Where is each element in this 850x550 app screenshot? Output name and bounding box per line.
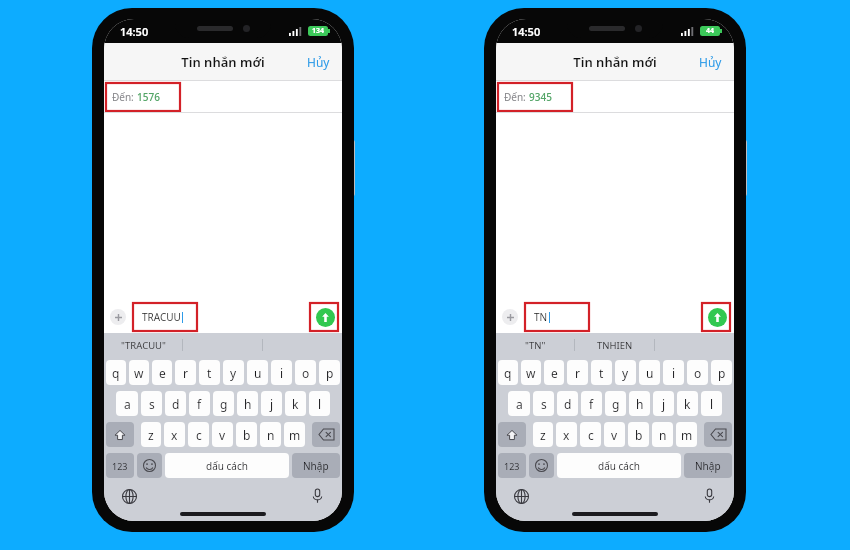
button[interactable]: f bbox=[189, 391, 210, 416]
staticText: n bbox=[267, 427, 275, 443]
staticText: j bbox=[270, 396, 274, 412]
button[interactable]: u bbox=[639, 360, 660, 385]
button[interactable]: Dictation bbox=[306, 485, 328, 507]
button[interactable]: q bbox=[498, 360, 518, 385]
button[interactable]: o bbox=[687, 360, 708, 385]
button[interactable]: i bbox=[271, 360, 292, 385]
button[interactable]: f bbox=[581, 391, 602, 416]
button[interactable]: Nhập bbox=[292, 453, 340, 478]
staticText: p bbox=[718, 365, 726, 381]
button[interactable]: o bbox=[295, 360, 316, 385]
button[interactable]: v bbox=[212, 422, 233, 447]
button[interactable]: Emoji bbox=[529, 453, 554, 478]
button[interactable]: l bbox=[701, 391, 722, 416]
button[interactable]: Hủy bbox=[687, 48, 734, 76]
staticText: a bbox=[516, 396, 523, 412]
button[interactable]: w bbox=[521, 360, 541, 385]
button[interactable]: Đến: bbox=[504, 90, 552, 104]
button[interactable]: b bbox=[236, 422, 257, 447]
button[interactable]: h bbox=[237, 391, 258, 416]
button[interactable]: u bbox=[247, 360, 268, 385]
button[interactable]: n bbox=[652, 422, 673, 447]
button[interactable]: a bbox=[508, 391, 530, 416]
button[interactable]: z bbox=[533, 422, 553, 447]
button[interactable]: d bbox=[165, 391, 186, 416]
button[interactable]: t bbox=[591, 360, 612, 385]
button[interactable]: TRACUU bbox=[133, 307, 308, 327]
button[interactable]: "TN" bbox=[496, 333, 574, 357]
button[interactable]: r bbox=[567, 360, 588, 385]
button[interactable]: y bbox=[223, 360, 244, 385]
button[interactable]: Emoji bbox=[137, 453, 162, 478]
button[interactable]: Đến: bbox=[112, 90, 160, 104]
button[interactable]: v bbox=[604, 422, 625, 447]
button[interactable]: TNHIEN bbox=[575, 333, 654, 357]
button[interactable]: c bbox=[188, 422, 209, 447]
button[interactable]: p bbox=[711, 360, 732, 385]
staticText: Đến: bbox=[504, 90, 529, 104]
button[interactable]: e bbox=[544, 360, 564, 385]
button[interactable]: t bbox=[199, 360, 220, 385]
staticText: u bbox=[646, 365, 654, 381]
button[interactable]: p bbox=[319, 360, 340, 385]
button[interactable]: Add attachment bbox=[502, 309, 518, 325]
button[interactable]: Send bbox=[706, 306, 728, 328]
button[interactable]: m bbox=[284, 422, 305, 447]
button[interactable]: Add attachment bbox=[110, 309, 126, 325]
button[interactable]: n bbox=[260, 422, 281, 447]
button[interactable]: d bbox=[557, 391, 578, 416]
button[interactable]: Dictation bbox=[698, 485, 720, 507]
staticText: y bbox=[622, 365, 629, 381]
button[interactable]: x bbox=[556, 422, 577, 447]
button[interactable]: j bbox=[261, 391, 282, 416]
button[interactable]: c bbox=[580, 422, 601, 447]
button[interactable]: y bbox=[615, 360, 636, 385]
staticText: m bbox=[681, 427, 693, 443]
button[interactable]: m bbox=[676, 422, 697, 447]
button[interactable]: 123 bbox=[106, 453, 134, 478]
staticText: g bbox=[612, 396, 620, 412]
button[interactable]: Hủy bbox=[295, 48, 342, 76]
button[interactable]: Backspace bbox=[312, 422, 340, 447]
staticText: k bbox=[684, 396, 691, 412]
button[interactable]: Send bbox=[314, 306, 336, 328]
staticText: 123 bbox=[504, 460, 520, 472]
staticText: i bbox=[672, 365, 676, 381]
button[interactable]: e bbox=[152, 360, 172, 385]
button[interactable]: r bbox=[175, 360, 196, 385]
button[interactable]: dấu cách bbox=[557, 453, 681, 478]
button[interactable]: g bbox=[213, 391, 234, 416]
button[interactable]: Backspace bbox=[704, 422, 732, 447]
button[interactable]: j bbox=[653, 391, 674, 416]
staticText: k bbox=[292, 396, 299, 412]
button[interactable]: k bbox=[677, 391, 698, 416]
button[interactable]: 123 bbox=[498, 453, 526, 478]
button[interactable]: h bbox=[629, 391, 650, 416]
button[interactable]: w bbox=[129, 360, 149, 385]
button[interactable]: s bbox=[533, 391, 554, 416]
button[interactable]: Nhập bbox=[684, 453, 732, 478]
button[interactable]: s bbox=[141, 391, 162, 416]
button[interactable]: b bbox=[628, 422, 649, 447]
button[interactable]: Shift bbox=[106, 422, 134, 447]
button[interactable]: k bbox=[285, 391, 306, 416]
button[interactable]: dấu cách bbox=[165, 453, 289, 478]
button[interactable]: i bbox=[663, 360, 684, 385]
button[interactable]: TN bbox=[525, 307, 700, 327]
button[interactable]: q bbox=[106, 360, 126, 385]
button[interactable]: Change keyboard language bbox=[510, 485, 532, 507]
button[interactable]: Change keyboard language bbox=[118, 485, 140, 507]
staticText: dấu cách bbox=[598, 459, 640, 473]
button[interactable]: l bbox=[309, 391, 330, 416]
staticText: t bbox=[599, 365, 604, 381]
button[interactable]: z bbox=[141, 422, 161, 447]
button[interactable]: x bbox=[164, 422, 185, 447]
button[interactable]: g bbox=[605, 391, 626, 416]
staticText: l bbox=[710, 396, 714, 412]
button[interactable]: a bbox=[116, 391, 138, 416]
button[interactable]: "TRACUU" bbox=[104, 333, 182, 357]
button[interactable]: Shift bbox=[498, 422, 526, 447]
